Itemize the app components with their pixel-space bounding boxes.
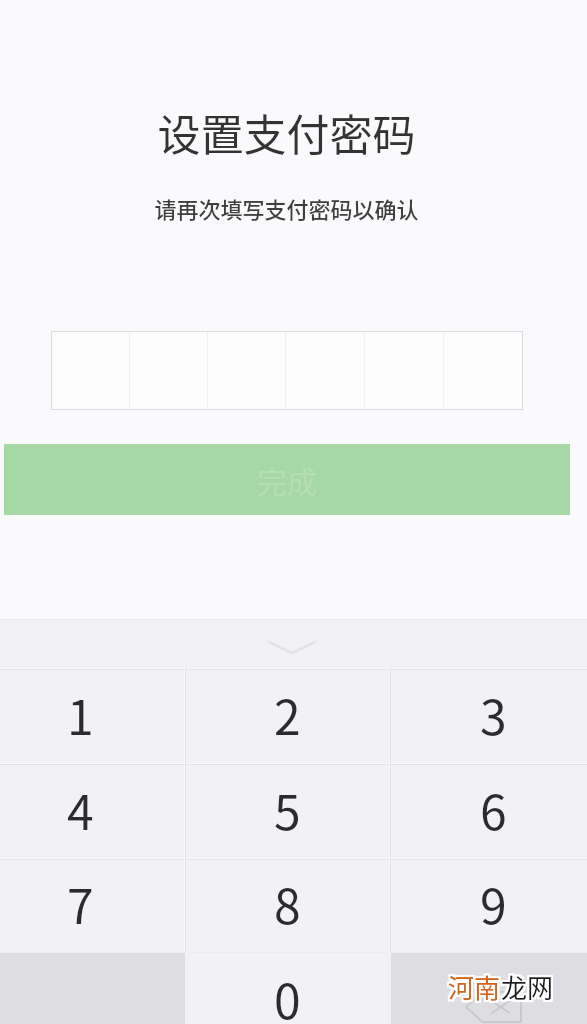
staticText: 河南 [450,966,503,1004]
button[interactable]: 4 [0,763,185,858]
button[interactable]: 9 [391,858,587,952]
staticText: 7 [67,868,94,938]
staticText: 龙网 [501,968,554,1006]
button[interactable]: 3 [391,668,587,763]
staticText: 龙网 [503,970,556,1008]
button[interactable]: 0 [185,952,391,1024]
staticText: 6 [480,774,507,844]
staticText: 河南 [450,970,503,1008]
staticText: 龙网 [501,970,554,1008]
button[interactable]: 8 [185,858,391,952]
staticText: 请再次填写支付密码以确认 [0,192,580,224]
staticText: 完成 [257,458,317,501]
staticText: 设置支付密码 [0,101,580,163]
button[interactable]: Delete [391,952,587,1024]
staticText: 龙网 [501,966,554,1004]
staticText: 龙网 [499,968,552,1006]
staticText: 龙网 [499,970,552,1008]
staticText: 0 [274,963,301,1024]
staticText: 8 [274,868,301,938]
staticText: 河南 [446,970,499,1008]
staticText: 3 [480,679,507,749]
staticText: 河南 [448,970,501,1008]
staticText: 河南 [448,966,501,1004]
staticText: 龙网 [499,966,552,1004]
staticText: 河南 [446,968,499,1006]
staticText: 2 [274,679,301,749]
button[interactable]: 6 [391,763,587,858]
staticText: 龙网 [503,966,556,1004]
staticText: 龙网 [503,968,556,1006]
staticText: 5 [274,774,301,844]
button[interactable]: 7 [0,858,185,952]
button[interactable]: 1 [0,668,185,763]
staticText: 河南 [450,968,503,1006]
staticText: 河南 [446,966,499,1004]
staticText: 1 [67,679,94,749]
staticText: 9 [480,868,507,938]
button[interactable]: 2 [185,668,391,763]
button[interactable]: 5 [185,763,391,858]
staticText: 河南 [448,968,501,1006]
staticText: 4 [67,774,94,844]
button[interactable]: Payment password input [51,331,523,410]
